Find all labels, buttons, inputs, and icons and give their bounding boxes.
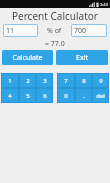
staticText: 6 [43, 92, 47, 100]
button[interactable]: 6 [36, 88, 53, 103]
staticText: 5 [26, 92, 30, 100]
staticText: Percent Calculator [12, 9, 98, 23]
button[interactable]: . [75, 88, 92, 103]
staticText: 4 [8, 92, 12, 100]
staticText: 3 [43, 77, 47, 85]
button[interactable]: 11 [3, 24, 38, 37]
staticText: 7 [64, 77, 68, 85]
staticText: 8 [82, 77, 86, 85]
staticText: 9 [99, 77, 103, 85]
button[interactable]: 5 [19, 88, 36, 103]
staticText: 11 [6, 26, 15, 36]
staticText: Calculate [12, 53, 43, 63]
staticText: % of [47, 26, 62, 36]
staticText: 2:43 [100, 2, 108, 7]
button[interactable]: 9 [92, 73, 109, 88]
staticText: Exit [76, 53, 88, 63]
button[interactable]: 7 [57, 73, 75, 88]
button[interactable]: 700 [71, 24, 107, 37]
button[interactable]: 8 [75, 73, 92, 88]
staticText: 700 [74, 26, 87, 36]
button[interactable]: 4 [1, 88, 19, 103]
staticText: del [96, 92, 105, 100]
button[interactable]: Exit [56, 50, 108, 65]
button[interactable]: del [92, 88, 109, 103]
button[interactable]: 0 [57, 88, 75, 103]
staticText: = 77.0 [45, 39, 65, 49]
staticText: . [83, 92, 85, 100]
button[interactable]: 2 [19, 73, 36, 88]
staticText: 0 [64, 92, 68, 100]
button[interactable]: Calculate [2, 50, 53, 65]
button[interactable]: 3 [36, 73, 53, 88]
staticText: 1 [8, 77, 12, 85]
staticText: 2 [26, 77, 30, 85]
button[interactable]: 1 [1, 73, 19, 88]
